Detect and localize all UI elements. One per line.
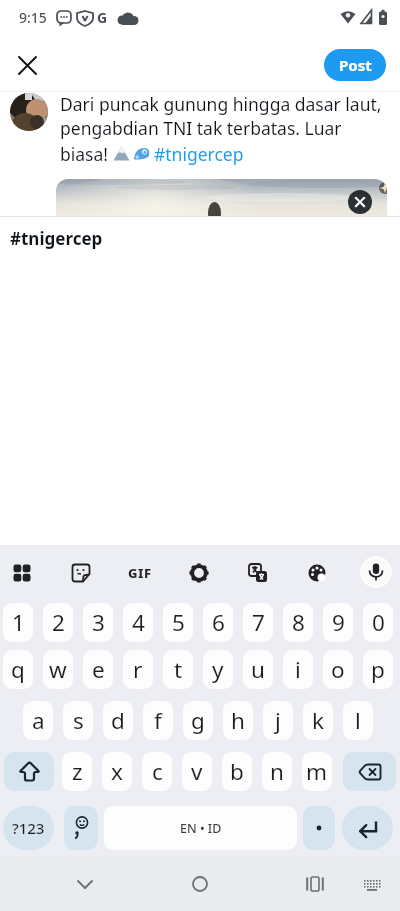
staticText: y bbox=[212, 654, 224, 685]
button[interactable]: o bbox=[323, 650, 353, 689]
staticText: 9 bbox=[332, 607, 345, 638]
staticText: n bbox=[270, 756, 284, 787]
staticText: 2 bbox=[52, 607, 65, 638]
button[interactable]: i bbox=[283, 650, 313, 689]
staticText: biasa! bbox=[60, 142, 113, 166]
button[interactable]: h bbox=[223, 701, 253, 740]
button[interactable]: GIF bbox=[122, 557, 158, 589]
staticText: u bbox=[251, 654, 265, 685]
staticText: a bbox=[32, 705, 45, 736]
button[interactable]: u bbox=[243, 650, 273, 689]
button[interactable]: 3 bbox=[83, 603, 113, 642]
staticText: h bbox=[231, 705, 245, 736]
button[interactable] bbox=[301, 557, 333, 589]
button[interactable]: g bbox=[183, 701, 213, 740]
staticText: o bbox=[331, 654, 345, 685]
button[interactable]: 0 bbox=[363, 603, 393, 642]
button[interactable]: #tnigercep bbox=[0, 216, 400, 258]
button[interactable]: b bbox=[222, 752, 252, 791]
staticText: d bbox=[111, 705, 125, 736]
staticText: c bbox=[152, 756, 163, 787]
button[interactable] bbox=[295, 864, 335, 904]
staticText: e bbox=[92, 654, 105, 685]
staticText: 5 bbox=[172, 607, 185, 638]
staticText: 9:15 bbox=[19, 8, 47, 27]
staticText: q bbox=[11, 654, 25, 685]
button[interactable]: q bbox=[3, 650, 33, 689]
button[interactable]: v bbox=[182, 752, 212, 791]
staticText: k bbox=[312, 705, 325, 736]
staticText: 4 bbox=[132, 607, 145, 638]
staticText: r bbox=[133, 654, 143, 685]
button[interactable]: 9 bbox=[323, 603, 353, 642]
button[interactable] bbox=[6, 557, 38, 589]
button[interactable]: t bbox=[163, 650, 193, 689]
button[interactable]: e bbox=[83, 650, 113, 689]
button[interactable] bbox=[342, 806, 393, 850]
button[interactable]: y bbox=[203, 650, 233, 689]
button[interactable] bbox=[354, 866, 390, 902]
staticText: pengabdian TNI tak terbatas. Luar bbox=[60, 116, 342, 140]
button[interactable]: a bbox=[23, 701, 53, 740]
button[interactable] bbox=[183, 557, 215, 589]
button[interactable]: f bbox=[143, 701, 173, 740]
button[interactable] bbox=[180, 864, 220, 904]
staticText: f bbox=[154, 705, 162, 736]
button[interactable]: j bbox=[263, 701, 293, 740]
button[interactable]: 5 bbox=[163, 603, 193, 642]
button[interactable]: m bbox=[302, 752, 332, 791]
button[interactable] bbox=[343, 752, 396, 791]
button[interactable] bbox=[65, 557, 97, 589]
button[interactable]: Post bbox=[324, 49, 386, 81]
button[interactable]: c bbox=[142, 752, 172, 791]
staticText: g bbox=[191, 705, 205, 736]
button[interactable]: z bbox=[62, 752, 92, 791]
button[interactable]: 7 bbox=[243, 603, 273, 642]
button[interactable]: p bbox=[363, 650, 393, 689]
staticText: Post bbox=[339, 55, 372, 75]
button[interactable] bbox=[348, 190, 372, 214]
button[interactable]: 8 bbox=[283, 603, 313, 642]
staticText: j bbox=[275, 705, 281, 736]
button[interactable]: l bbox=[343, 701, 373, 740]
button[interactable] bbox=[13, 51, 42, 80]
staticText: b bbox=[230, 756, 244, 787]
staticText: G bbox=[97, 8, 108, 27]
staticText: s bbox=[73, 705, 84, 736]
button[interactable]: x bbox=[102, 752, 132, 791]
button[interactable]: EN • ID bbox=[104, 806, 297, 850]
button[interactable]: 4 bbox=[123, 603, 153, 642]
staticText: p bbox=[371, 654, 385, 685]
button[interactable]: w bbox=[43, 650, 73, 689]
staticText: z bbox=[72, 756, 83, 787]
staticText: t bbox=[174, 654, 183, 685]
staticText: 0 bbox=[372, 607, 385, 638]
button[interactable]: d bbox=[103, 701, 133, 740]
staticText: #tnigercep bbox=[154, 142, 244, 166]
button[interactable] bbox=[303, 806, 335, 850]
staticText: 7 bbox=[252, 607, 265, 638]
staticText: l bbox=[355, 705, 361, 736]
staticText: ?123 bbox=[12, 818, 45, 838]
button[interactable]: s bbox=[63, 701, 93, 740]
staticText: GIF bbox=[128, 564, 152, 582]
button[interactable] bbox=[65, 864, 105, 904]
staticText: i bbox=[295, 654, 301, 685]
button[interactable]: ?123 bbox=[3, 806, 54, 850]
button[interactable]: 1 bbox=[3, 603, 33, 642]
staticText: m bbox=[306, 756, 328, 787]
button[interactable] bbox=[4, 752, 54, 791]
staticText: w bbox=[49, 654, 67, 685]
staticText: 6 bbox=[212, 607, 225, 638]
button[interactable] bbox=[360, 556, 392, 588]
button[interactable] bbox=[64, 806, 98, 850]
button[interactable]: r bbox=[123, 650, 153, 689]
staticText: x bbox=[111, 756, 123, 787]
staticText: #tnigercep bbox=[10, 227, 103, 250]
button[interactable]: 2 bbox=[43, 603, 73, 642]
button[interactable]: n bbox=[262, 752, 292, 791]
button[interactable] bbox=[242, 557, 274, 589]
staticText: v bbox=[191, 756, 203, 787]
button[interactable]: k bbox=[303, 701, 333, 740]
button[interactable]: 6 bbox=[203, 603, 233, 642]
